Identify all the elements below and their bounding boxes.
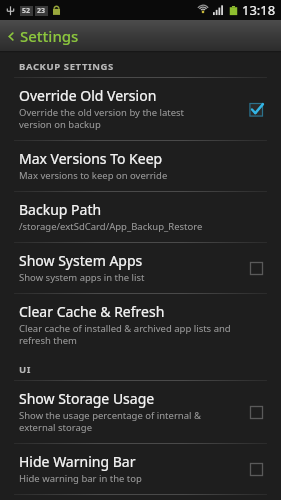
- staticText: Show System Apps: [19, 251, 143, 270]
- button[interactable]: Unchecked: [245, 401, 267, 423]
- staticText: Clear Cache & Refresh: [19, 302, 165, 321]
- staticText: 52: [22, 6, 31, 16]
- button[interactable]: Show Storage Usage: [0, 381, 281, 443]
- staticText: Clear cache of installed & archived app …: [19, 322, 231, 347]
- button[interactable]: Unchecked: [245, 458, 267, 480]
- button[interactable]: Max Versions To Keep: [0, 141, 281, 191]
- staticText: Override Old Version: [19, 86, 157, 105]
- staticText: BACKUP SETTINGS: [19, 60, 114, 73]
- staticText: Hide warning bar in the top: [19, 472, 142, 485]
- staticText: Override the old version by the latest v…: [19, 106, 185, 131]
- staticText: /storage/extSdCard/App_Backup_Restore: [19, 220, 203, 233]
- staticText: Show Storage Usage: [19, 389, 155, 408]
- staticText: Show the usage percentage of internal & …: [19, 409, 201, 434]
- button[interactable]: Hide Warning Bar: [0, 444, 281, 494]
- button[interactable]: Backup Path: [0, 192, 281, 242]
- button[interactable]: Checked: [245, 98, 267, 120]
- staticText: Show system apps in the list: [19, 271, 145, 284]
- staticText: Backup Path: [19, 200, 102, 219]
- other: Back: [6, 31, 17, 42]
- staticText: Max versions to keep on override: [19, 169, 168, 182]
- staticText: Settings: [20, 26, 79, 46]
- staticText: Hide Warning Bar: [19, 452, 136, 471]
- button[interactable]: Clear Cache & Refresh: [0, 294, 281, 356]
- staticText: Max Versions To Keep: [19, 149, 163, 168]
- button[interactable]: Back: [0, 20, 281, 51]
- button[interactable]: Override Old Version: [0, 78, 281, 140]
- staticText: UI: [19, 363, 32, 376]
- staticText: 23: [37, 6, 46, 16]
- staticText: 13:18: [242, 1, 276, 19]
- button[interactable]: Show System Apps: [0, 243, 281, 293]
- button[interactable]: Unchecked: [245, 257, 267, 279]
